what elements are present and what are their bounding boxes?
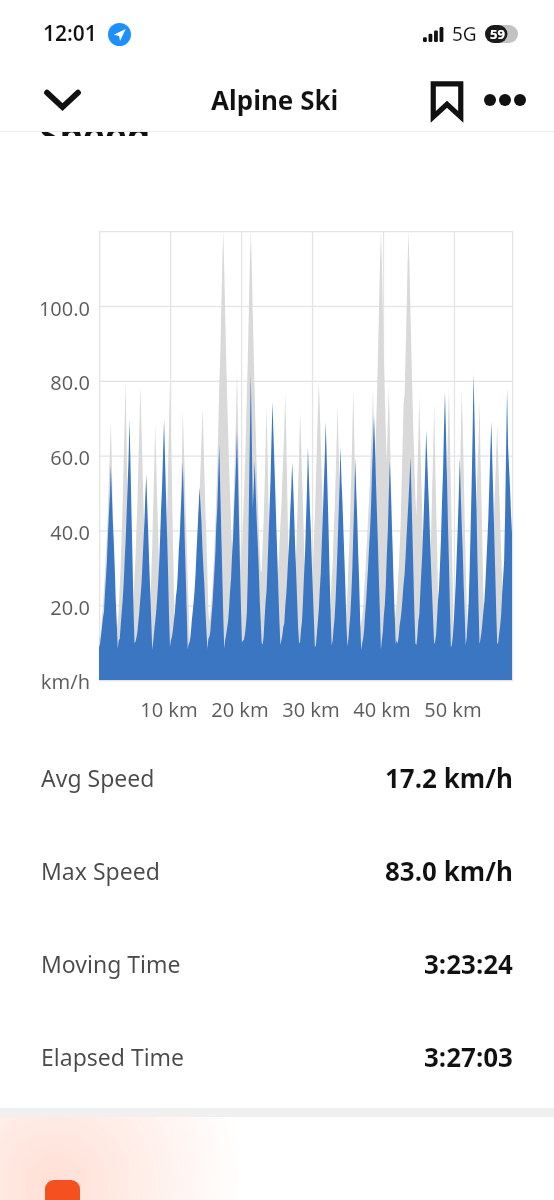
staticText: 100.0: [0, 295, 90, 322]
staticText: 17.2 km/h: [385, 760, 513, 795]
staticText: 20 km: [195, 696, 285, 723]
button[interactable]: Max Speed: [0, 824, 554, 917]
button[interactable]: Avg Speed: [0, 731, 554, 824]
button[interactable]: Record activity: [45, 1180, 80, 1200]
staticText: km/h: [0, 668, 90, 695]
staticText: 80.0: [0, 369, 90, 396]
button[interactable]: Collapse: [30, 68, 94, 131]
staticText: 30 km: [266, 696, 356, 723]
button[interactable]: Moving Time: [0, 917, 554, 1010]
staticText: 12:01: [43, 19, 97, 48]
staticText: 40 km: [337, 696, 427, 723]
staticText: 83.0 km/h: [385, 853, 513, 888]
staticText: Avg Speed: [41, 762, 155, 793]
staticText: 5G: [452, 21, 477, 47]
staticText: Alpine Ski: [211, 82, 339, 117]
button[interactable]: More options: [476, 71, 534, 129]
staticText: 3:23:24: [424, 946, 513, 981]
staticText: 20.0: [0, 594, 90, 621]
staticText: Moving Time: [41, 948, 181, 979]
staticText: 50 km: [408, 696, 498, 723]
button[interactable]: Bookmark: [418, 71, 476, 129]
staticText: 40.0: [0, 519, 90, 546]
staticText: Max Speed: [41, 855, 160, 886]
staticText: 10 km: [124, 696, 214, 723]
staticText: 60.0: [0, 444, 90, 471]
button[interactable]: Elapsed Time: [0, 1010, 554, 1103]
staticText: 3:27:03: [424, 1039, 513, 1074]
staticText: Elapsed Time: [41, 1041, 185, 1072]
staticText: Speed: [39, 132, 151, 136]
staticText: 59: [490, 25, 505, 43]
